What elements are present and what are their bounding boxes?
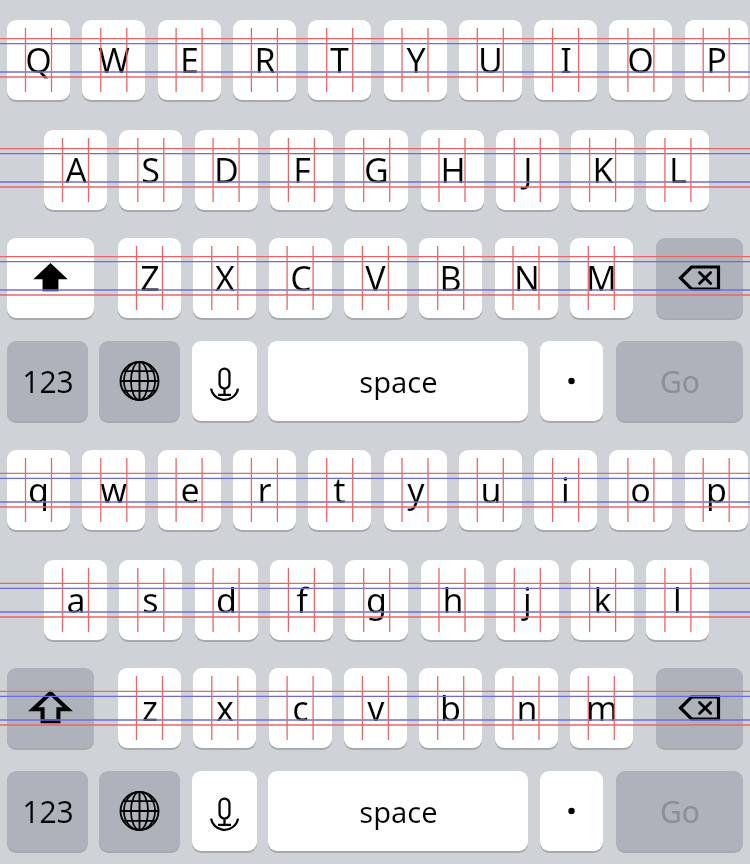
staticText: G (364, 147, 389, 193)
button[interactable]: 123 (7, 341, 88, 421)
button[interactable]: E (158, 20, 221, 100)
button[interactable]: S (119, 130, 182, 210)
button[interactable]: m (570, 668, 633, 748)
staticText: e (180, 467, 200, 513)
button[interactable]: U (459, 20, 522, 100)
button[interactable]: u (459, 450, 522, 530)
button[interactable]: C (269, 238, 332, 318)
button[interactable]: g (345, 560, 408, 640)
button[interactable]: Delete (656, 668, 743, 748)
button[interactable]: a (44, 560, 107, 640)
button[interactable]: Dictate (192, 341, 257, 421)
button[interactable]: w (82, 450, 145, 530)
button[interactable]: R (233, 20, 296, 100)
staticText: h (442, 577, 464, 623)
staticText: t (333, 467, 346, 513)
button[interactable]: Dictate (192, 771, 257, 851)
button[interactable]: c (269, 668, 332, 748)
button[interactable]: Shift (7, 238, 94, 318)
button[interactable]: O (609, 20, 672, 100)
button[interactable] (540, 771, 603, 851)
button[interactable]: L (646, 130, 709, 210)
button[interactable]: o (609, 450, 672, 530)
staticText: m (586, 685, 618, 731)
button[interactable]: s (119, 560, 182, 640)
staticText: D (214, 147, 239, 193)
staticText: F (293, 147, 311, 193)
button[interactable]: Go (616, 341, 743, 421)
button[interactable]: W (82, 20, 145, 100)
staticText: A (65, 147, 87, 193)
staticText: b (440, 685, 461, 731)
button[interactable] (540, 341, 603, 421)
button[interactable]: f (270, 560, 333, 640)
staticText: C (290, 255, 312, 301)
button[interactable]: J (496, 130, 559, 210)
button[interactable]: Next keyboard (99, 771, 180, 851)
staticText: K (592, 147, 614, 193)
button[interactable]: Delete (656, 238, 743, 318)
staticText: w (100, 467, 127, 513)
staticText: j (523, 577, 532, 623)
button[interactable]: h (421, 560, 484, 640)
button[interactable]: Go (616, 771, 743, 851)
button[interactable]: Q (7, 20, 70, 100)
button[interactable]: 123 (7, 771, 88, 851)
button[interactable]: Next keyboard (99, 341, 180, 421)
staticText: l (673, 577, 682, 623)
button[interactable]: F (270, 130, 333, 210)
staticText: M (586, 255, 617, 301)
button[interactable]: Y (384, 20, 447, 100)
staticText: k (593, 577, 612, 623)
button[interactable]: v (344, 668, 407, 748)
button[interactable]: V (344, 238, 407, 318)
button[interactable]: Z (118, 238, 181, 318)
button[interactable]: A (44, 130, 107, 210)
button[interactable]: z (118, 668, 181, 748)
button[interactable]: p (685, 450, 748, 530)
button[interactable]: i (534, 450, 597, 530)
button[interactable]: x (193, 668, 256, 748)
staticText: H (440, 147, 466, 193)
staticText: W (98, 37, 130, 83)
button[interactable]: k (571, 560, 634, 640)
button[interactable]: y (384, 450, 447, 530)
staticText: 123 (22, 361, 74, 402)
staticText: Go (660, 361, 700, 402)
staticText: p (706, 467, 727, 513)
staticText: v (367, 685, 385, 731)
staticText: U (478, 37, 503, 83)
button[interactable]: P (685, 20, 748, 100)
staticText: E (180, 37, 199, 83)
staticText: Y (406, 37, 426, 83)
button[interactable]: d (195, 560, 258, 640)
staticText: r (257, 467, 272, 513)
button[interactable]: G (345, 130, 408, 210)
button[interactable]: j (496, 560, 559, 640)
staticText: space (359, 362, 438, 401)
button[interactable]: H (421, 130, 484, 210)
button[interactable]: M (570, 238, 633, 318)
staticText: s (142, 577, 159, 623)
button[interactable]: space (268, 771, 528, 851)
button[interactable]: l (646, 560, 709, 640)
button[interactable]: K (571, 130, 634, 210)
button[interactable]: N (495, 238, 558, 318)
button[interactable]: t (308, 450, 371, 530)
button[interactable]: space (268, 341, 528, 421)
staticText: I (560, 37, 572, 83)
staticText: L (669, 147, 687, 193)
staticText: q (28, 467, 49, 513)
button[interactable]: b (419, 668, 482, 748)
button[interactable]: q (7, 450, 70, 530)
button[interactable]: B (419, 238, 482, 318)
button[interactable]: Shift (7, 668, 94, 748)
button[interactable]: e (158, 450, 221, 530)
button[interactable]: T (308, 20, 371, 100)
button[interactable]: X (193, 238, 256, 318)
button[interactable]: n (495, 668, 558, 748)
staticText: Q (25, 37, 52, 83)
button[interactable]: D (195, 130, 258, 210)
button[interactable]: r (233, 450, 296, 530)
button[interactable]: I (534, 20, 597, 100)
